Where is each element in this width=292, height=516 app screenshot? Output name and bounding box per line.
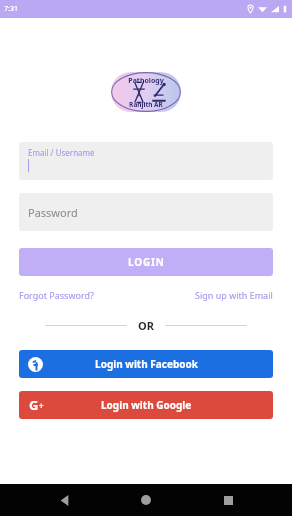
button[interactable]: Home xyxy=(128,484,164,516)
staticText: Pathology xyxy=(128,76,164,86)
button[interactable]: Sign up with Email xyxy=(195,289,273,301)
button[interactable]: Forgot Password? xyxy=(19,289,94,301)
staticText: 7:31 xyxy=(4,4,18,14)
staticText: Login with Facebook xyxy=(95,357,198,371)
staticText: Forgot Password? xyxy=(19,289,94,301)
staticText: OR xyxy=(138,318,154,333)
other: Google xyxy=(29,396,44,414)
other: Facebook xyxy=(28,357,43,372)
staticText: + xyxy=(39,400,44,411)
button[interactable]: Recents xyxy=(210,484,246,516)
button[interactable]: Back xyxy=(46,484,82,516)
staticText: Sign up with Email xyxy=(195,289,273,301)
staticText: Password xyxy=(28,205,78,220)
button[interactable]: Password xyxy=(19,193,273,231)
button[interactable]: LOGIN xyxy=(19,248,273,276)
button[interactable]: Email / Username xyxy=(19,142,273,180)
button[interactable]: Google xyxy=(19,391,273,419)
staticText: G xyxy=(29,396,39,414)
staticText: Login with Google xyxy=(101,398,192,412)
staticText: Ranjith AR xyxy=(129,100,163,109)
staticText: LOGIN xyxy=(128,255,165,269)
button[interactable]: Facebook xyxy=(19,350,273,378)
staticText: Email / Username xyxy=(28,147,95,158)
